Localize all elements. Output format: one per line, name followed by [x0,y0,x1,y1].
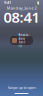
staticText: Swipe up to open [7,85,35,90]
button[interactable]: Reminders [10,36,33,45]
staticText: ▮ [37,0,39,5]
staticText: Stand up [18,40,25,48]
staticText: Reminders [18,33,29,40]
staticText: 9:41 [4,0,11,5]
staticText: 08:41 [3,7,39,27]
staticText: Monday, June 2 [6,5,36,11]
